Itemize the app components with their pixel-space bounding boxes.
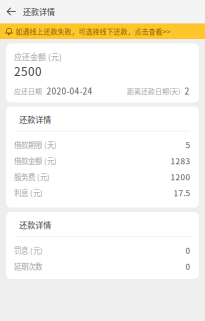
staticText: 还款详情 <box>23 6 55 17</box>
staticText: 17.5 <box>173 187 190 199</box>
staticText: 服务费 (元) <box>14 171 50 182</box>
staticText: 距离还款日期(天) <box>127 86 180 96</box>
staticText: 延期次数 <box>14 261 42 272</box>
staticText: 2020-04-24 <box>46 85 92 97</box>
staticText: 2500 <box>14 62 42 79</box>
button[interactable]: Back <box>0 0 23 23</box>
staticText: 罚息 (元) <box>14 245 43 256</box>
button[interactable]: 如遇线上还款失败，可选择线下还款，点击查看>> <box>0 23 205 39</box>
staticText: 2 <box>184 85 189 97</box>
staticText: 0 <box>185 244 190 256</box>
staticText: 应还日期 <box>14 86 42 96</box>
staticText: 1283 <box>170 155 190 167</box>
staticText: 利息 (元) <box>14 187 43 198</box>
staticText: 0 <box>185 260 190 272</box>
staticText: 如遇线上还款失败，可选择线下还款，点击查看>> <box>15 26 170 36</box>
staticText: 借款期限 (天) <box>14 139 57 150</box>
staticText: 还款详情 <box>19 113 51 125</box>
staticText: 借款金额 (元) <box>14 155 57 166</box>
staticText: 还款详情 <box>19 219 51 230</box>
staticText: 1200 <box>170 171 190 183</box>
staticText: 应还金额 (元) <box>14 51 62 62</box>
staticText: 5 <box>185 139 190 151</box>
